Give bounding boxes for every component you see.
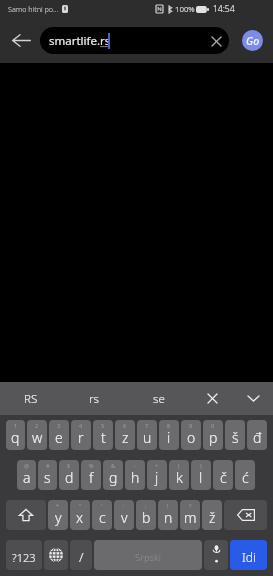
staticText: ) [200,462,202,469]
button[interactable]: ć [235,460,255,490]
staticText: 0 [211,422,215,429]
button[interactable]: j [147,460,167,490]
button[interactable]: Voice input [204,540,228,570]
button[interactable]: č [213,460,233,490]
staticText: s [44,468,51,487]
staticText: t [101,428,106,447]
button[interactable]: v [114,500,134,530]
button[interactable]: Change language [44,540,68,570]
button[interactable]: r [71,420,91,450]
button[interactable]: Close suggestions [191,382,233,415]
button[interactable]: Clear [203,28,229,54]
staticText: ' [101,502,103,509]
staticText: č [220,468,227,487]
button[interactable]: Backspace [224,500,267,530]
staticText: 8 [167,422,171,429]
button[interactable]: ?123 [6,540,42,570]
button[interactable]: p [203,420,223,450]
button[interactable]: m [180,500,200,530]
button[interactable]: đ [247,420,267,450]
button[interactable]: rs [61,382,127,415]
staticText: đ [253,428,262,447]
staticText: n [164,508,173,527]
button[interactable]: d [59,460,79,490]
staticText: a [23,468,31,487]
staticText: % [89,462,94,469]
staticText: m [184,508,197,527]
button[interactable]: s [38,460,57,490]
button[interactable]: Back [0,18,40,63]
staticText: f [89,468,94,487]
button[interactable]: Shift [6,500,46,530]
button[interactable]: g [103,460,123,490]
staticText: " [79,502,82,509]
staticText: 100% [175,4,195,15]
staticText: p [209,428,218,447]
button[interactable]: smartlife.rs [40,27,229,54]
button[interactable]: w [27,420,47,450]
button[interactable]: Go [242,30,263,51]
staticText: w [32,428,43,447]
staticText: z [122,428,129,447]
staticText: smartlife.rs [49,33,111,49]
staticText: r [78,428,84,447]
button[interactable]: b [136,500,156,530]
staticText: u [143,428,152,447]
staticText: ! [167,502,169,509]
button[interactable]: n [158,500,178,530]
button[interactable]: y [48,500,68,530]
staticText: k [176,468,183,487]
staticText: ( [178,462,180,469]
staticText: ?123 [12,550,36,565]
staticText: l [199,468,203,487]
staticText: Go [246,34,260,48]
staticText: c [99,508,106,527]
button[interactable]: š [225,420,245,450]
staticText: - [134,462,136,469]
staticText: h [131,468,140,487]
staticText: * [56,502,60,509]
button[interactable]: f [81,460,101,490]
staticText: 5 [101,422,105,429]
staticText: & [111,462,116,469]
button[interactable]: t [93,420,113,450]
staticText: e [55,428,63,447]
staticText: + [155,462,159,469]
button[interactable]: c [92,500,112,530]
staticText: RS [24,391,38,407]
button[interactable]: x [70,500,90,530]
staticText: 14:54 [213,3,235,15]
staticText: š [232,428,239,447]
button[interactable]: q [6,420,25,450]
button[interactable]: o [181,420,201,450]
button[interactable]: se [127,382,191,415]
button[interactable]: / [70,540,92,570]
button[interactable]: a [17,460,36,490]
staticText: ć [242,468,249,487]
button[interactable]: Srpski [94,540,202,570]
button[interactable]: z [115,420,135,450]
button[interactable]: u [137,420,157,450]
button[interactable]: Idi [230,540,267,570]
staticText: 9 [189,422,193,429]
staticText: ; [145,502,147,509]
staticText: : [123,502,125,509]
staticText: o [187,428,196,447]
button[interactable]: e [49,420,69,450]
staticText: $ [67,462,71,469]
button[interactable]: Expand suggestions [233,382,273,415]
staticText: ž [209,508,216,527]
button[interactable]: h [125,460,145,490]
staticText: 3 [57,422,61,429]
button[interactable]: RS [0,382,61,415]
button[interactable]: l [191,460,211,490]
button[interactable]: k [169,460,189,490]
button[interactable]: ž [202,500,222,530]
button[interactable]: i [159,420,179,450]
staticText: d [65,468,74,487]
staticText: 4 [79,422,83,429]
staticText: Samo hitni po... [8,4,59,14]
staticText: Srpski [135,551,161,564]
staticText: se [153,391,165,407]
staticText: ? [189,502,192,509]
